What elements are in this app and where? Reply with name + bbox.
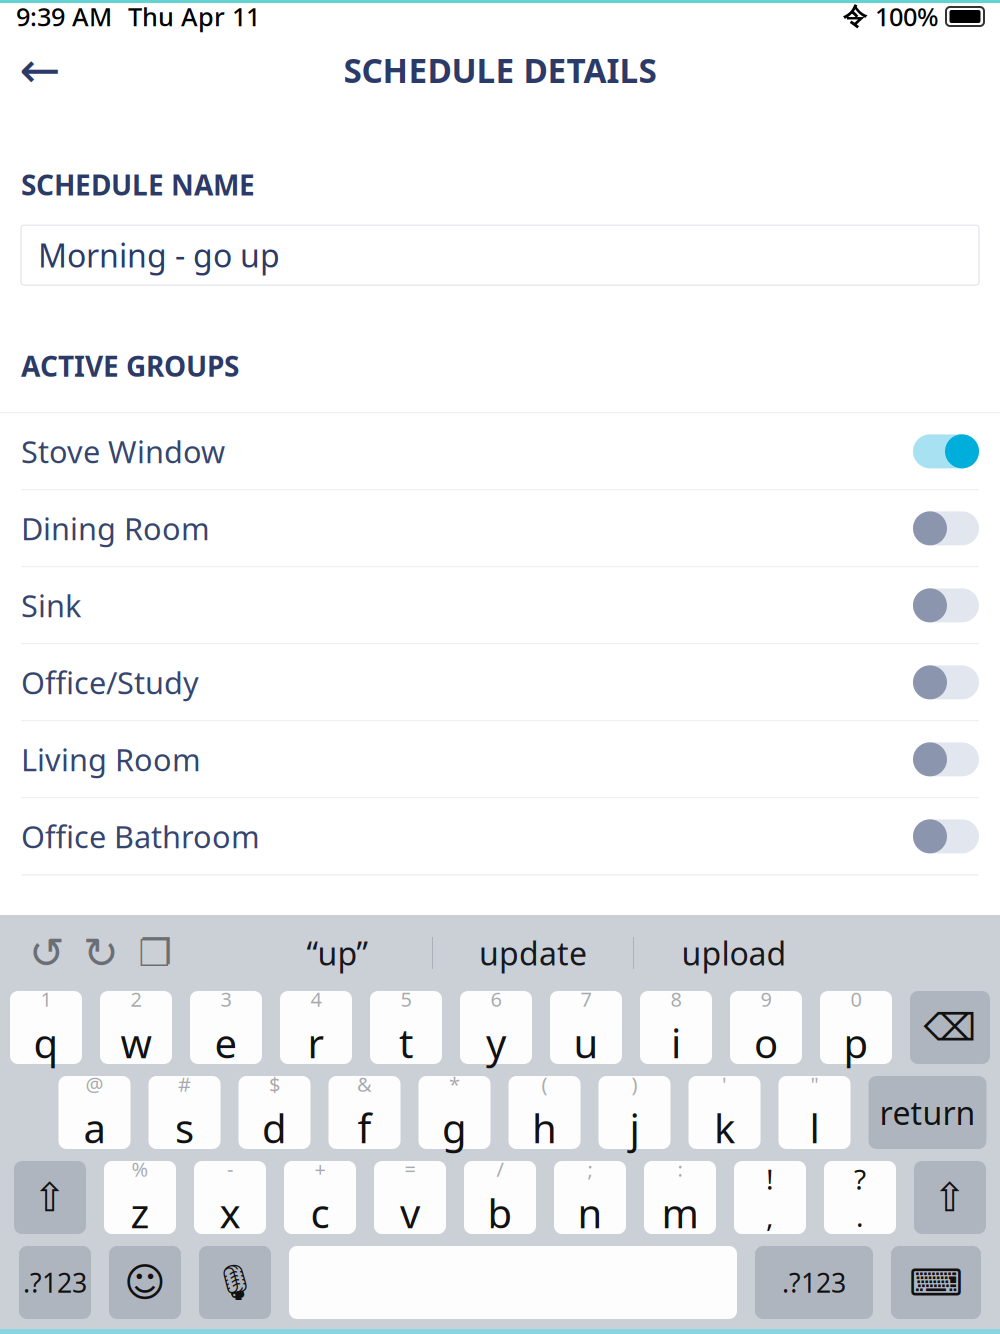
button[interactable]: Dining Room [0,490,1000,567]
staticText: c [310,1186,329,1239]
staticText: Living Room [21,739,201,780]
button[interactable]: Office Bathroom [0,798,1000,875]
button[interactable]: n [554,1161,626,1234]
staticText: : [677,1156,682,1182]
button[interactable]: x [194,1161,266,1234]
staticText: g [442,1101,467,1154]
staticText: Dining Room [21,508,210,549]
staticText: y [486,1016,506,1069]
button[interactable]: l [778,1076,850,1149]
staticText: .?123 [23,1265,87,1300]
staticText: , [766,1197,774,1235]
button[interactable]: upload [634,929,834,977]
button[interactable]: Back [10,40,70,100]
staticText: ↺ [29,929,65,977]
staticText: p [843,1016,868,1069]
staticText: * [449,1071,460,1097]
button[interactable]: q [10,991,82,1064]
button[interactable]: w [100,991,172,1064]
staticText: = [404,1156,415,1182]
button[interactable]: return [868,1076,986,1149]
staticText: 6 [490,986,501,1012]
button[interactable]: ⇧ [14,1161,86,1234]
button[interactable]: h [508,1076,580,1149]
button[interactable]: Toggle on [913,434,979,468]
button[interactable]: .?123 [19,1246,91,1319]
staticText: x [219,1186,240,1239]
staticText: SCHEDULE DETAILS [343,48,656,92]
button[interactable]: b [464,1161,536,1234]
button[interactable]: f [328,1076,400,1149]
button[interactable]: Office/Study [0,644,1000,721]
button[interactable]: ⌨ [891,1246,981,1319]
button[interactable]: Undo [20,926,74,980]
staticText: d [262,1101,287,1154]
staticText: update [479,932,587,974]
button[interactable]: Toggle off [913,588,979,622]
button[interactable]: Toggle off [913,819,979,853]
button[interactable]: g [418,1076,490,1149]
staticText: l [809,1101,819,1154]
button[interactable]: t [370,991,442,1064]
staticText: return [879,1091,975,1134]
button[interactable]: a [58,1076,130,1149]
button[interactable]: k [688,1076,760,1149]
staticText: j [629,1101,639,1154]
staticText: k [714,1101,735,1154]
button[interactable]: Toggle off [913,742,979,776]
button[interactable]: y [460,991,532,1064]
button[interactable]: ? [824,1161,896,1234]
button[interactable]: ⌫ [910,991,990,1064]
staticText: ⇧ [33,1175,67,1220]
staticText: / [496,1156,503,1182]
button[interactable]: Living Room [0,721,1000,798]
staticText: ⇧ [933,1175,967,1220]
staticText: Office/Study [21,662,199,703]
button[interactable]: Redo [74,926,128,980]
button[interactable]: update [433,929,633,977]
button[interactable]: j [598,1076,670,1149]
staticText: 4 [310,986,321,1012]
button[interactable]: u [550,991,622,1064]
button[interactable]: d [238,1076,310,1149]
staticText: u [573,1016,598,1069]
staticText: z [130,1186,149,1239]
staticText: 9 [760,986,771,1012]
button[interactable]: Morning - go up [21,225,979,285]
staticText: i [671,1016,681,1069]
button[interactable]: Toggle off [913,511,979,545]
staticText: 5 [400,986,411,1012]
button[interactable]: i [640,991,712,1064]
staticText: ) [631,1071,637,1097]
staticText: " [810,1071,818,1097]
staticText: 8 [670,986,681,1012]
button[interactable]: ! [734,1161,806,1234]
button[interactable]: o [730,991,802,1064]
button[interactable]: p [820,991,892,1064]
staticText: ⌨ [909,1261,963,1304]
button[interactable]: ⇧ [914,1161,986,1234]
button[interactable]: .?123 [755,1246,873,1319]
button[interactable]: ☺ [109,1246,181,1319]
staticText: 🎙 [213,1263,257,1302]
button[interactable]: Sink [0,567,1000,644]
button[interactable]: “up” [242,929,432,977]
button[interactable]: Stove Window [0,413,1000,490]
button[interactable]: 🎙 [199,1246,271,1319]
button[interactable]: c [284,1161,356,1234]
button[interactable]: Toggle off [913,665,979,699]
staticText: a [83,1101,105,1154]
button[interactable]: s [148,1076,220,1149]
button[interactable]: v [374,1161,446,1234]
button[interactable]: m [644,1161,716,1234]
button[interactable]: r [280,991,352,1064]
staticText: 100% [875,0,939,33]
staticText: e [214,1016,237,1069]
button[interactable]: z [104,1161,176,1234]
button[interactable]: e [190,991,262,1064]
staticText: v [400,1186,420,1239]
staticText: ? [854,1160,866,1197]
button[interactable]: Paste [128,926,182,980]
